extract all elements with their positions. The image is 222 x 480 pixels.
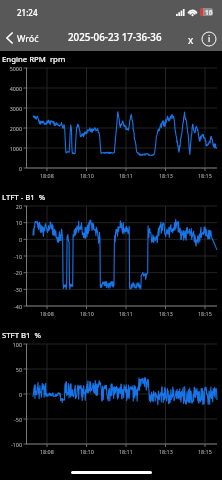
staticText: 2000 xyxy=(9,125,22,132)
staticText: Wróć xyxy=(17,32,39,44)
staticText: 18:08 xyxy=(40,310,54,317)
staticText: -50 xyxy=(14,416,22,423)
staticText: -10 xyxy=(14,253,22,260)
staticText: -100 xyxy=(11,441,22,448)
button[interactable]: Wróć xyxy=(0,28,45,48)
staticText: 5000 xyxy=(9,65,22,72)
staticText: 18:13 xyxy=(159,448,173,455)
staticText: 3000 xyxy=(9,105,22,112)
staticText: 18:13 xyxy=(159,172,173,179)
staticText: 18:13 xyxy=(159,310,173,317)
staticText: 2025-06-23 17-36-36 xyxy=(68,31,162,44)
staticText: 1000 xyxy=(9,145,22,152)
staticText: STFT B1 % xyxy=(2,330,42,341)
staticText: 18:08 xyxy=(40,172,54,179)
staticText: 18:15 xyxy=(198,310,212,317)
staticText: -20 xyxy=(14,269,22,276)
staticText: 18:10 xyxy=(80,310,94,317)
staticText: 0 xyxy=(18,236,22,243)
staticText: -40 xyxy=(14,303,22,310)
staticText: 4000 xyxy=(9,85,22,92)
staticText: 18:11 xyxy=(119,448,133,455)
button[interactable]: Close xyxy=(182,30,199,47)
button[interactable]: Info xyxy=(199,28,219,48)
staticText: x xyxy=(188,33,194,47)
staticText: 18:15 xyxy=(198,448,212,455)
staticText: 18:08 xyxy=(40,448,54,455)
staticText: LTFT - B1 % xyxy=(2,192,46,203)
staticText: Engine RPM rpm xyxy=(2,54,66,65)
staticText: 18:15 xyxy=(198,172,212,179)
staticText: 18:11 xyxy=(119,310,133,317)
staticText: 100 xyxy=(12,341,22,348)
staticText: 18:10 xyxy=(80,448,94,455)
staticText: 18:10 xyxy=(80,172,94,179)
staticText: 20 xyxy=(15,203,22,210)
staticText: 16 xyxy=(205,8,213,16)
staticText: i xyxy=(208,33,211,45)
staticText: 21:24 xyxy=(17,7,38,18)
staticText: 0 xyxy=(18,391,22,398)
staticText: 18:11 xyxy=(119,172,133,179)
staticText: 0 xyxy=(18,165,22,172)
staticText: 50 xyxy=(15,366,22,373)
staticText: -30 xyxy=(14,286,22,293)
staticText: 10 xyxy=(15,219,22,226)
